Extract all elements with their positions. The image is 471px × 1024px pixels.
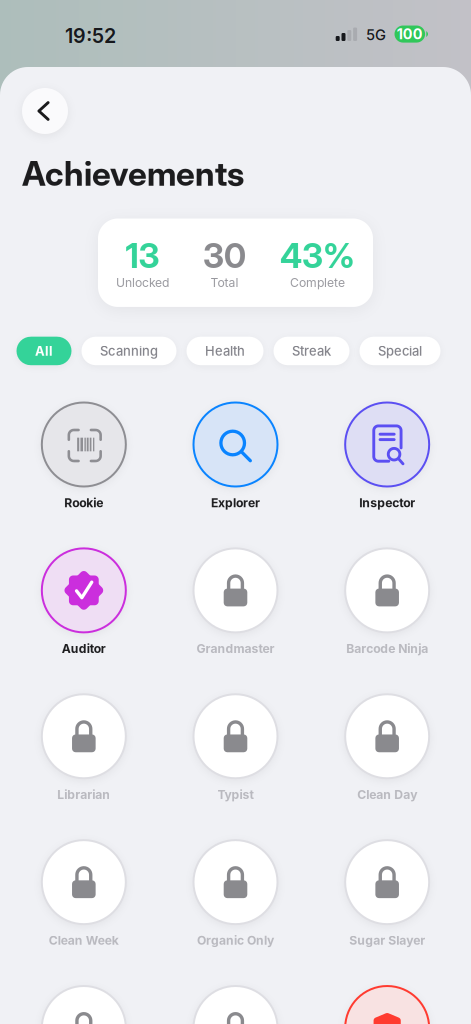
staticText: Complete bbox=[290, 275, 345, 290]
button[interactable]: Clean Day bbox=[311, 694, 463, 802]
staticText: 30 bbox=[203, 235, 246, 276]
button[interactable]: Night Owl bbox=[8, 986, 160, 1024]
staticText: Special bbox=[378, 343, 422, 359]
staticText: 13 bbox=[125, 235, 159, 276]
button[interactable]: Typist bbox=[160, 694, 311, 802]
staticText: Auditor bbox=[62, 641, 106, 656]
button[interactable]: Streak bbox=[273, 337, 349, 365]
button[interactable]: Scanning bbox=[81, 337, 176, 365]
button[interactable]: Early Bird bbox=[160, 986, 311, 1024]
staticText: Explorer bbox=[211, 495, 260, 510]
staticText: Organic Only bbox=[197, 933, 274, 948]
staticText: Barcode Ninja bbox=[346, 641, 428, 656]
button[interactable]: Grandmaster bbox=[160, 548, 311, 656]
button[interactable]: Auditor bbox=[8, 548, 160, 656]
staticText: Sugar Slayer bbox=[349, 933, 425, 948]
staticText: Achievements bbox=[22, 153, 244, 194]
button[interactable]: Back bbox=[22, 88, 68, 134]
staticText: Librarian bbox=[57, 787, 110, 802]
button[interactable]: Health bbox=[186, 337, 263, 365]
staticText: Unlocked bbox=[116, 275, 169, 290]
staticText: 100 bbox=[397, 25, 423, 43]
button[interactable]: Librarian bbox=[8, 694, 160, 802]
button[interactable]: Special bbox=[359, 337, 440, 365]
staticText: Grandmaster bbox=[196, 641, 274, 656]
button[interactable]: Inspector bbox=[311, 402, 463, 510]
button[interactable]: Organic Only bbox=[160, 840, 311, 948]
button[interactable]: Red Alert bbox=[311, 986, 463, 1024]
staticText: All bbox=[35, 343, 53, 359]
button[interactable]: Sugar Slayer bbox=[311, 840, 463, 948]
button[interactable]: All bbox=[16, 337, 71, 365]
staticText: Health bbox=[205, 343, 245, 359]
staticText: 5G bbox=[366, 26, 386, 44]
button[interactable]: Clean Week bbox=[8, 840, 160, 948]
staticText: Typist bbox=[217, 787, 253, 802]
staticText: Rookie bbox=[64, 495, 103, 510]
staticText: Streak bbox=[292, 343, 331, 359]
staticText: Inspector bbox=[359, 495, 415, 510]
staticText: Clean Day bbox=[357, 787, 417, 802]
staticText: Scanning bbox=[100, 343, 158, 359]
button[interactable]: Barcode Ninja bbox=[311, 548, 463, 656]
button[interactable]: Rookie bbox=[8, 402, 160, 510]
staticText: 19:52 bbox=[65, 24, 116, 48]
staticText: Total bbox=[210, 275, 238, 290]
staticText: 43% bbox=[280, 235, 355, 276]
button[interactable]: Explorer bbox=[160, 402, 311, 510]
staticText: Clean Week bbox=[49, 933, 119, 948]
